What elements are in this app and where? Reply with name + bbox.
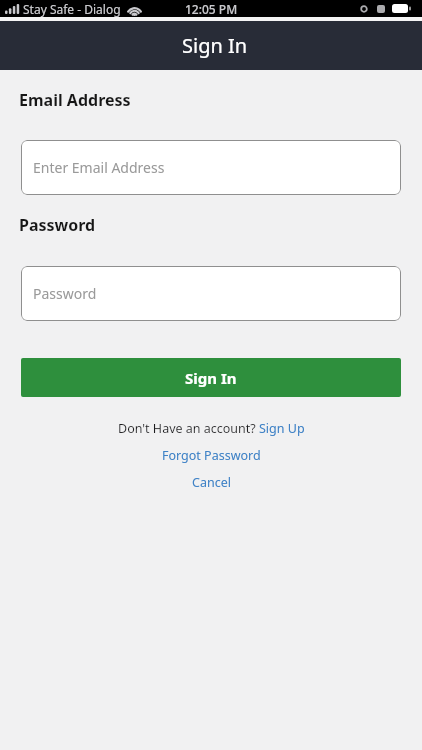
button[interactable]: Forgot Password <box>162 447 261 464</box>
staticText: Sign In <box>185 368 237 388</box>
staticText: Email Address <box>19 89 131 111</box>
staticText: Sign In <box>182 32 248 59</box>
button[interactable]: Password <box>21 266 401 321</box>
button[interactable]: Sign In <box>21 358 401 397</box>
button[interactable]: Sign Up <box>259 420 305 437</box>
staticText: Stay Safe - Dialog <box>23 1 121 17</box>
staticText: 12:05 PM <box>185 1 238 17</box>
staticText: Password <box>33 284 97 303</box>
staticText: Enter Email Address <box>33 158 165 177</box>
staticText: Don't Have an account? <box>118 420 259 437</box>
button[interactable]: Cancel <box>192 474 231 491</box>
staticText: Password <box>19 214 96 236</box>
button[interactable]: Enter Email Address <box>21 140 401 195</box>
